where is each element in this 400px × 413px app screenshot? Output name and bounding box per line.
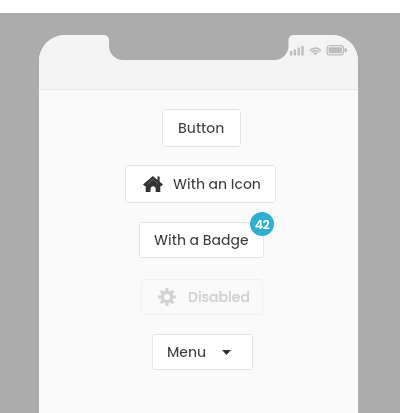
button[interactable]: Disabled <box>141 279 263 315</box>
staticText: With an Icon <box>173 174 261 194</box>
staticText: Button <box>178 118 225 138</box>
staticText: Disabled <box>188 287 250 307</box>
button[interactable]: Button <box>162 109 241 147</box>
button[interactable]: Menu <box>152 334 253 370</box>
staticText: With a Badge <box>154 230 249 250</box>
button[interactable]: With a Badge <box>139 222 264 258</box>
staticText: Menu <box>167 342 207 362</box>
button[interactable]: With an Icon <box>125 165 276 203</box>
staticText: 42 <box>255 216 270 233</box>
button[interactable]: 42 unread <box>250 212 274 236</box>
